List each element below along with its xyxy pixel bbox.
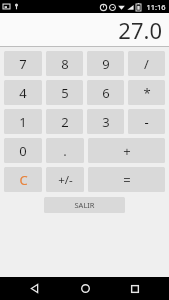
- button[interactable]: C: [4, 167, 42, 192]
- button[interactable]: Back: [17, 277, 51, 300]
- staticText: 9: [102, 55, 110, 73]
- staticText: +/-: [58, 172, 73, 188]
- staticText: 6: [102, 84, 110, 102]
- staticText: 11:16: [146, 2, 166, 12]
- button[interactable]: *: [128, 80, 165, 105]
- button[interactable]: Recent apps: [118, 277, 152, 300]
- staticText: 4: [19, 84, 27, 102]
- staticText: 1: [19, 113, 27, 131]
- button[interactable]: +/-: [46, 167, 84, 192]
- button[interactable]: 2: [46, 109, 83, 134]
- staticText: 7: [19, 55, 27, 73]
- button[interactable]: 7: [4, 51, 42, 76]
- staticText: 27.0: [118, 15, 162, 45]
- staticText: 0: [19, 142, 27, 160]
- staticText: 3: [102, 113, 110, 131]
- staticText: /: [144, 55, 149, 73]
- button[interactable]: /: [128, 51, 165, 76]
- button[interactable]: 1: [4, 109, 42, 134]
- staticText: 5: [61, 84, 69, 102]
- staticText: 8: [61, 55, 69, 73]
- staticText: =: [123, 171, 131, 189]
- button[interactable]: 6: [87, 80, 124, 105]
- button[interactable]: Home: [68, 277, 102, 300]
- button[interactable]: 9: [87, 51, 124, 76]
- staticText: SALIR: [74, 200, 95, 210]
- staticText: -: [144, 113, 149, 131]
- button[interactable]: =: [88, 167, 165, 192]
- button[interactable]: SALIR: [44, 197, 125, 213]
- staticText: .: [63, 142, 67, 160]
- staticText: C: [19, 171, 28, 189]
- button[interactable]: 0: [4, 138, 42, 163]
- button[interactable]: +: [88, 138, 165, 163]
- button[interactable]: 3: [87, 109, 124, 134]
- staticText: +: [123, 142, 131, 160]
- staticText: *: [143, 84, 151, 102]
- button[interactable]: -: [128, 109, 165, 134]
- button[interactable]: 5: [46, 80, 83, 105]
- button[interactable]: .: [46, 138, 84, 163]
- staticText: 2: [61, 113, 69, 131]
- button[interactable]: 8: [46, 51, 83, 76]
- button[interactable]: 4: [4, 80, 42, 105]
